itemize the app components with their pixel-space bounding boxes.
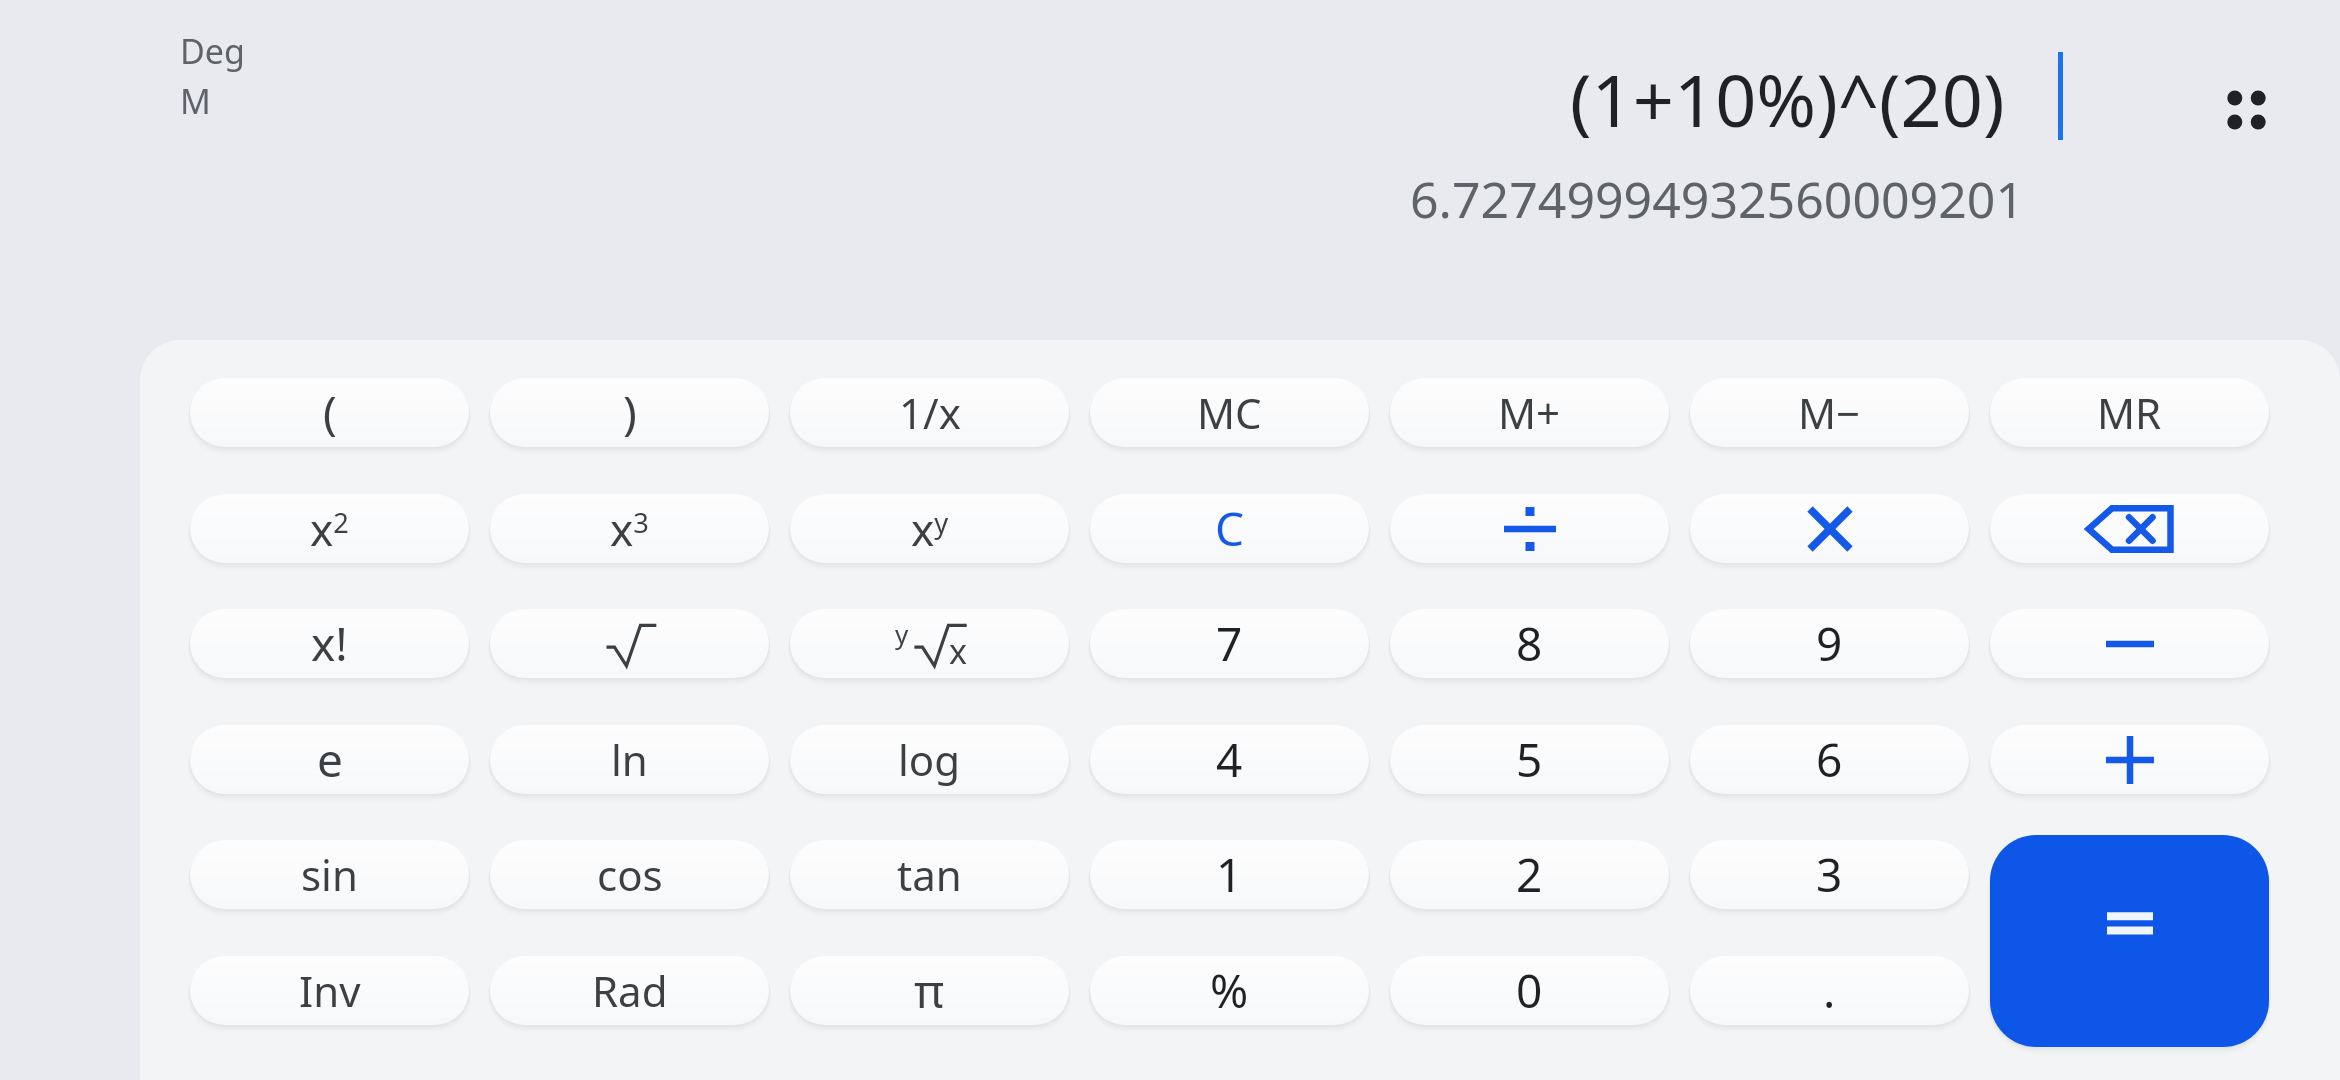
button[interactable]: More options [2190, 55, 2300, 165]
button[interactable]: 1/x [790, 378, 1069, 447]
button[interactable]: π [790, 956, 1069, 1025]
button[interactable]: ln [490, 725, 769, 794]
button[interactable]: 0 [1390, 956, 1669, 1025]
staticText: π [914, 959, 945, 1022]
staticText: M− [1798, 384, 1861, 441]
staticText: % [1210, 959, 1249, 1022]
button[interactable] [1990, 725, 2269, 794]
button[interactable]: tan [790, 840, 1069, 909]
button[interactable]: Backspace [1990, 494, 2269, 563]
staticText: log [898, 731, 961, 788]
staticText: sin [301, 846, 358, 903]
button[interactable]: 8 [1390, 609, 1669, 678]
staticText: 4 [1216, 728, 1243, 791]
button[interactable]: C [1090, 494, 1369, 563]
button[interactable]: 6 [1690, 725, 1969, 794]
staticText: 5 [1516, 728, 1543, 791]
staticText: y [895, 616, 909, 651]
staticText: 0 [1516, 959, 1543, 1022]
button[interactable]: Equals [1990, 835, 2269, 1047]
button[interactable]: . [1690, 956, 1969, 1025]
button[interactable]: 2 [1390, 840, 1669, 909]
staticText: xy [911, 499, 949, 559]
button[interactable]: e [190, 725, 469, 794]
button[interactable]: 4 [1090, 725, 1369, 794]
button[interactable] [1690, 494, 1969, 563]
button[interactable]: ) [490, 378, 769, 447]
staticText: Inv [299, 962, 361, 1019]
staticText: x2 [310, 499, 349, 559]
button[interactable]: 3 [1690, 840, 1969, 909]
staticText: MR [2097, 384, 2162, 441]
staticText: C [1215, 497, 1245, 560]
button[interactable]: Rad [490, 956, 769, 1025]
staticText: ln [611, 731, 648, 788]
button[interactable]: y [790, 609, 1069, 678]
staticText: x! [311, 612, 348, 675]
staticText: 6 [1816, 728, 1843, 791]
button[interactable]: Inv [190, 956, 469, 1025]
button[interactable] [1990, 609, 2269, 678]
staticText: . [1823, 959, 1836, 1022]
staticText: 8 [1516, 612, 1543, 675]
staticText: tan [897, 846, 962, 903]
staticText: MC [1197, 384, 1262, 441]
button[interactable]: % [1090, 956, 1369, 1025]
button[interactable]: log [790, 725, 1069, 794]
button[interactable] [1390, 494, 1669, 563]
staticText: M [180, 78, 211, 124]
staticText: ( [323, 381, 337, 444]
button[interactable]: x2 [190, 494, 469, 563]
button[interactable]: M+ [1390, 378, 1669, 447]
button[interactable]: 9 [1690, 609, 1969, 678]
staticText: cos [597, 846, 663, 903]
button[interactable]: 1 [1090, 840, 1369, 909]
staticText: 6.72749994932560009201 [1410, 165, 2024, 233]
button[interactable]: ( [190, 378, 469, 447]
staticText: 2 [1516, 843, 1543, 906]
button[interactable]: x3 [490, 494, 769, 563]
staticText: 3 [1816, 843, 1843, 906]
other: Backspace [2082, 498, 2178, 560]
button[interactable]: cos [490, 840, 769, 909]
staticText: 7 [1216, 612, 1243, 675]
button[interactable]: 5 [1390, 725, 1669, 794]
staticText: x [949, 628, 967, 674]
button[interactable]: xy [790, 494, 1069, 563]
button[interactable]: 7 [1090, 609, 1369, 678]
staticText: 1 [1216, 843, 1243, 906]
button[interactable]: MC [1090, 378, 1369, 447]
staticText: M+ [1498, 384, 1561, 441]
button[interactable]: MR [1990, 378, 2269, 447]
staticText: 9 [1816, 612, 1843, 675]
staticText: Deg [180, 28, 245, 74]
staticText: (1+10%)^(20) [1570, 50, 2005, 148]
button[interactable]: x! [190, 609, 469, 678]
staticText: e [317, 728, 343, 791]
staticText: 1/x [899, 384, 961, 441]
button[interactable] [490, 609, 769, 678]
staticText: x3 [610, 499, 649, 559]
button[interactable]: sin [190, 840, 469, 909]
staticText: ) [623, 381, 637, 444]
button[interactable]: M− [1690, 378, 1969, 447]
staticText: Rad [592, 962, 668, 1019]
